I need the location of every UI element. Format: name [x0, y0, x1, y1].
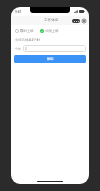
staticText: 分段上班 — [45, 29, 59, 33]
button[interactable]: 限时上班 — [14, 28, 35, 34]
staticText: 9:41 — [15, 10, 22, 14]
staticText: 2 — [25, 47, 27, 51]
button[interactable]: Close — [82, 19, 86, 23]
staticText: 工作休息 — [44, 18, 59, 23]
staticText: 今日已休息2小时 — [15, 37, 40, 42]
button[interactable]: 确定 — [14, 55, 86, 63]
staticText: 确定 — [47, 57, 54, 61]
staticText: 小时 — [15, 47, 21, 51]
button[interactable]: 分段上班 — [39, 28, 60, 34]
button[interactable]: More — [72, 19, 80, 23]
staticText: 限时上班 — [20, 29, 34, 33]
button[interactable]: 2 — [23, 45, 86, 52]
